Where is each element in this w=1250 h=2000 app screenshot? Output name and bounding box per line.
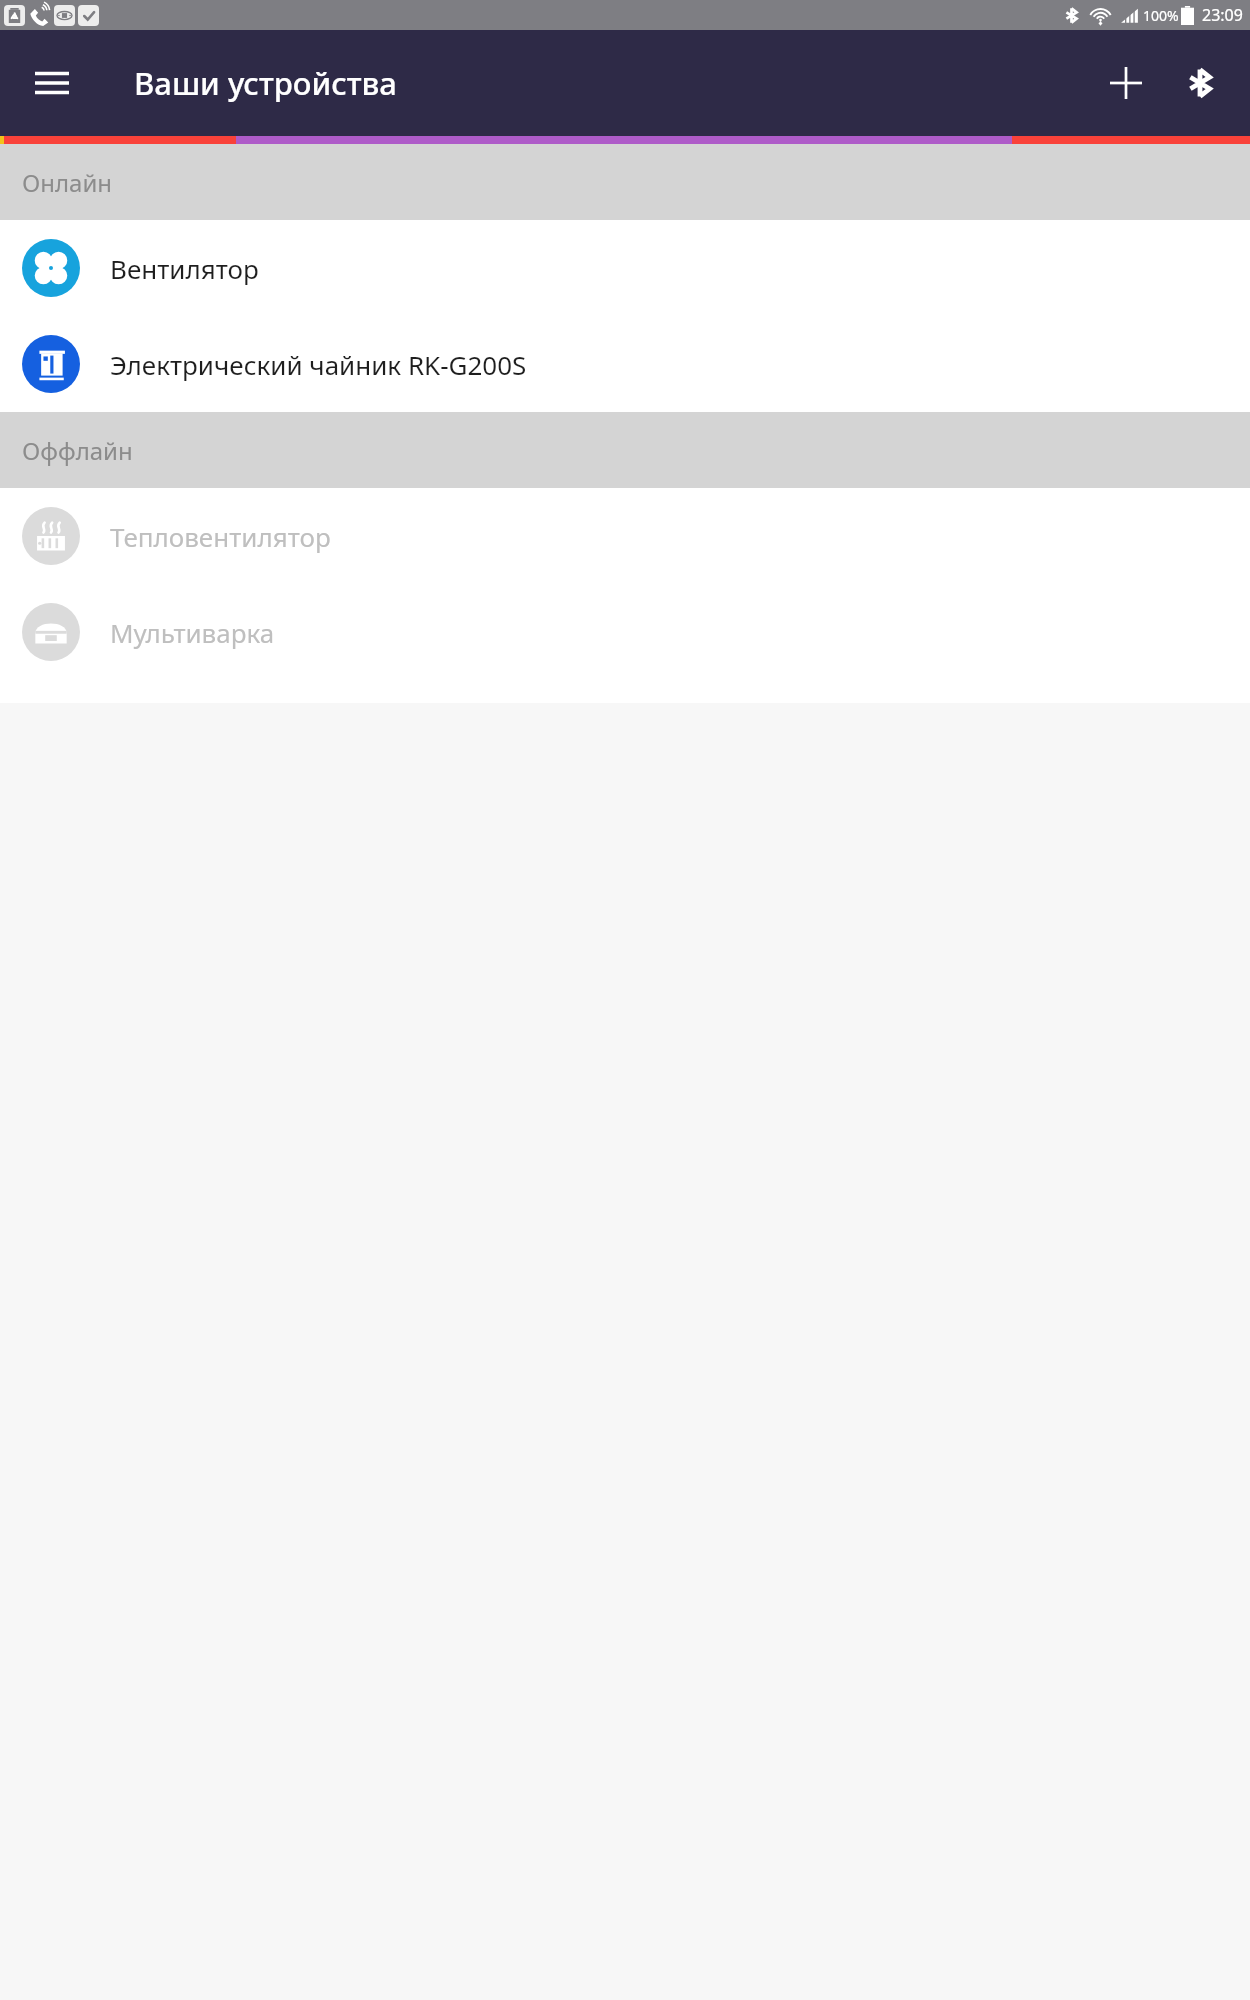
- button[interactable]: Вентилятор: [0, 220, 1250, 316]
- button[interactable]: Меню: [20, 51, 84, 115]
- staticText: Мультиварка: [110, 615, 275, 650]
- staticText: Ваши устройства: [134, 62, 397, 104]
- staticText: 100%: [1143, 6, 1179, 25]
- button[interactable]: Электрический чайник RK-G200S: [0, 316, 1250, 412]
- staticText: 23:09: [1202, 4, 1243, 26]
- staticText: Вентилятор: [110, 251, 259, 286]
- button[interactable]: Bluetooth: [1168, 51, 1232, 115]
- button[interactable]: Тепловентилятор: [0, 488, 1250, 584]
- staticText: Тепловентилятор: [110, 519, 331, 554]
- staticText: Электрический чайник RK-G200S: [110, 347, 527, 382]
- staticText: Онлайн: [22, 166, 113, 199]
- button[interactable]: Добавить: [1094, 51, 1158, 115]
- button[interactable]: Мультиварка: [0, 584, 1250, 680]
- staticText: Оффлайн: [22, 434, 133, 467]
